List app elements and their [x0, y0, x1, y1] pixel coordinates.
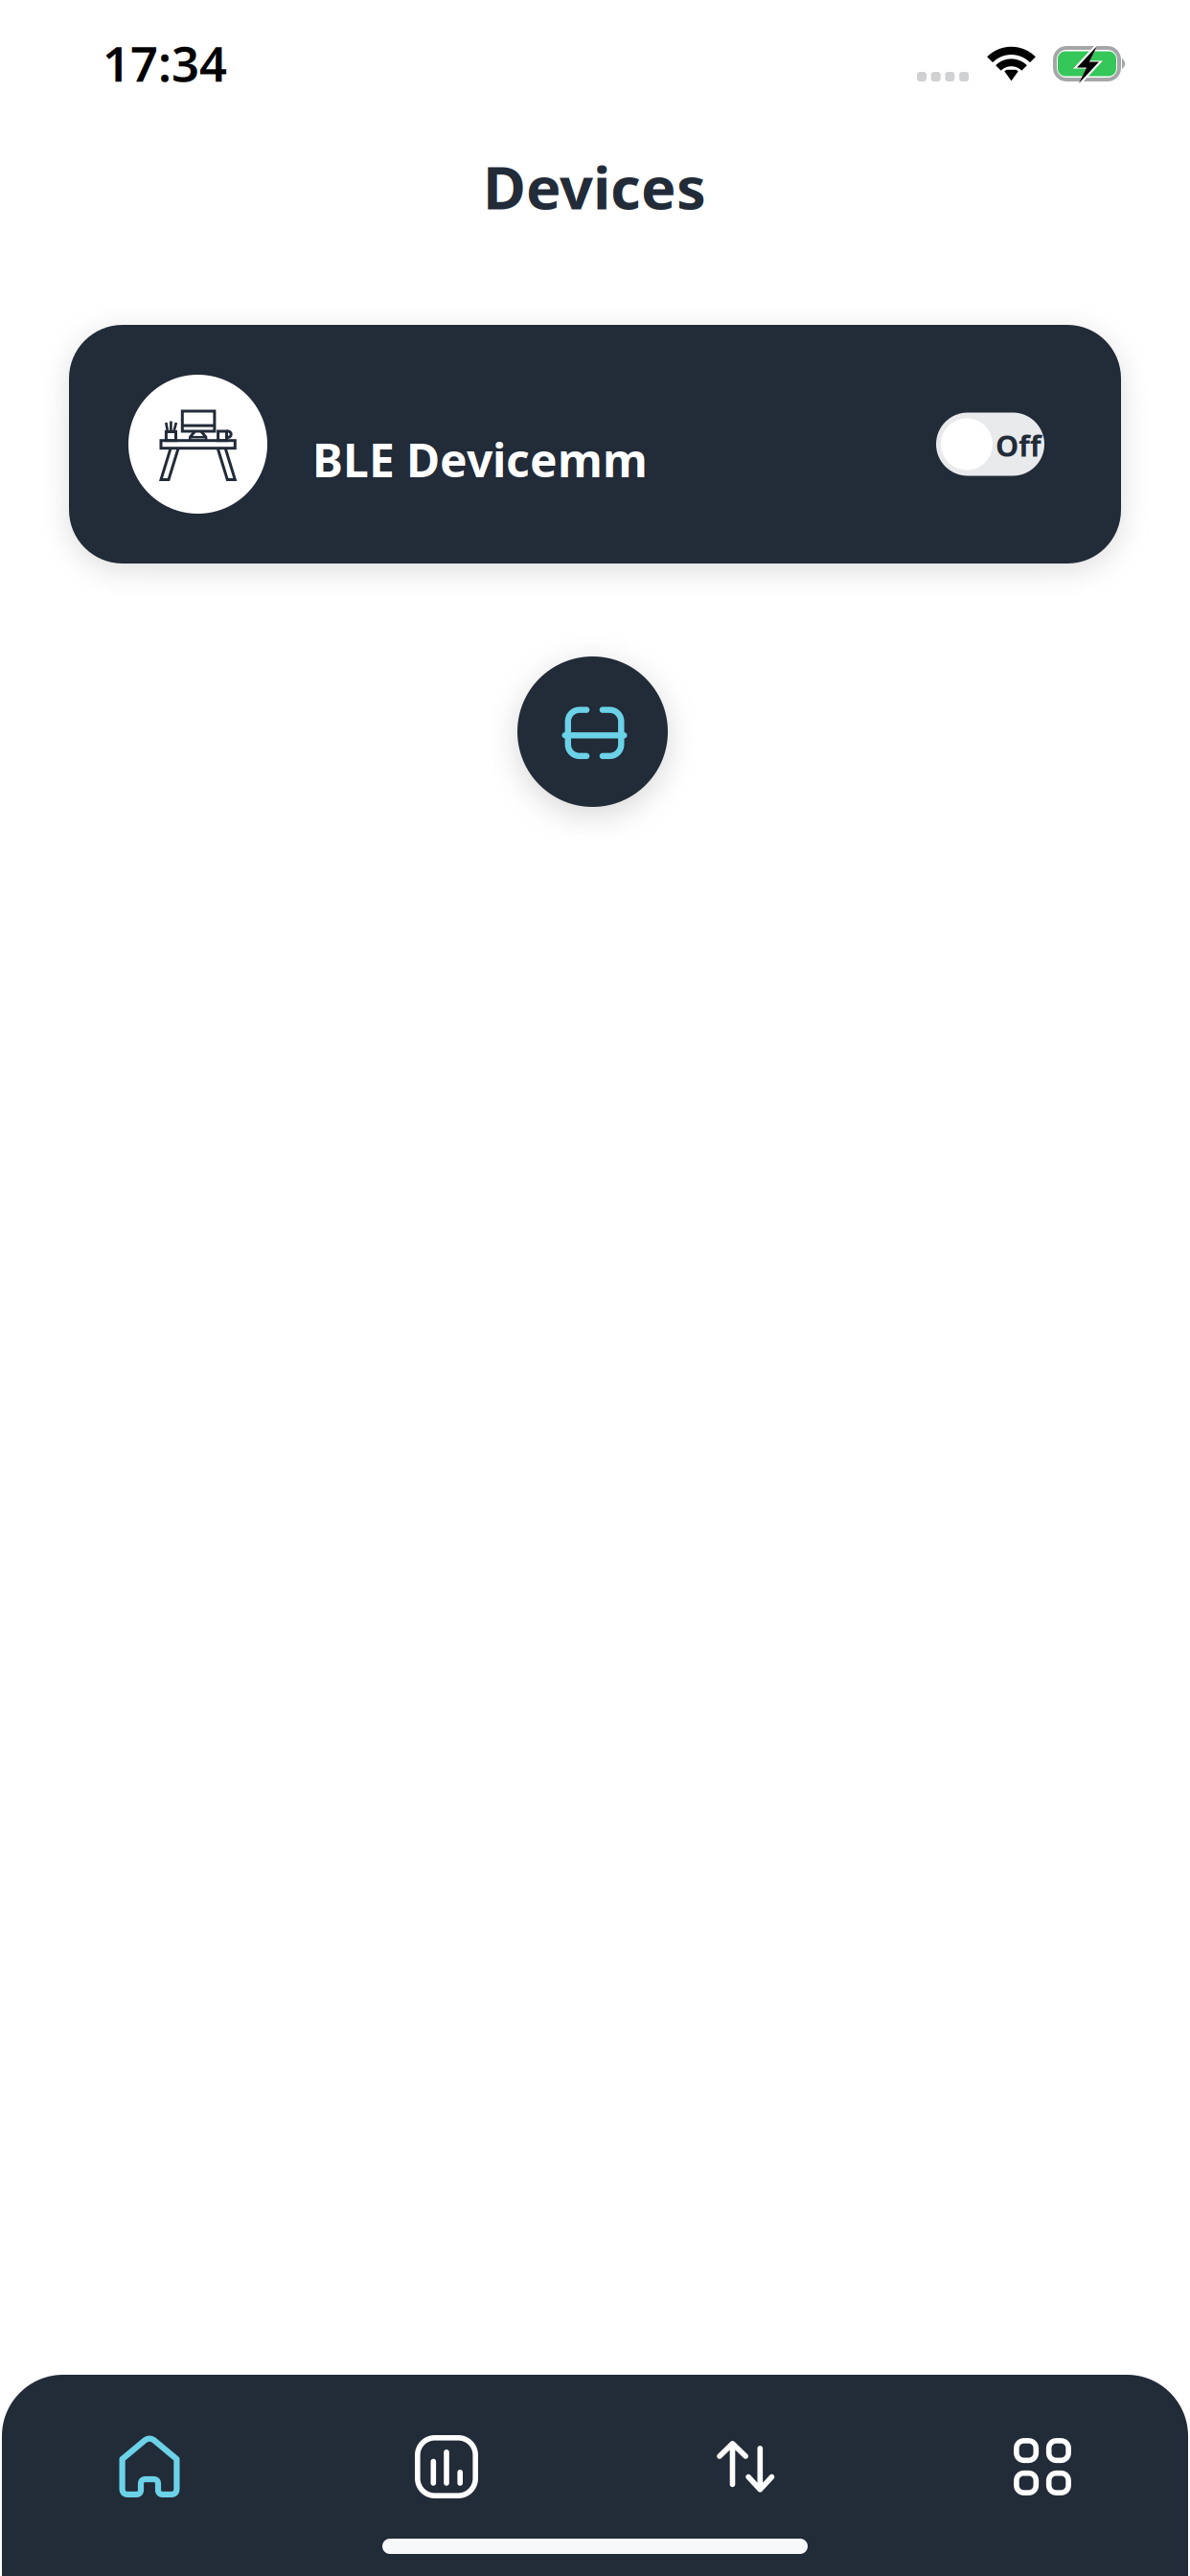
button[interactable]: Scan for devices — [517, 656, 668, 807]
staticText: Devices — [483, 148, 706, 226]
staticText: BLE Devicemm — [312, 429, 648, 490]
button[interactable]: Home — [68, 2408, 231, 2523]
button[interactable]: BLE Devicemm — [69, 325, 1121, 563]
button[interactable]: Transfer — [666, 2409, 829, 2524]
staticText: Off — [995, 426, 1041, 465]
button[interactable]: More — [961, 2409, 1124, 2524]
button[interactable]: Power toggle, Off — [936, 413, 1070, 476]
staticText: 17:34 — [103, 31, 227, 95]
button[interactable]: Statistics — [365, 2409, 528, 2524]
